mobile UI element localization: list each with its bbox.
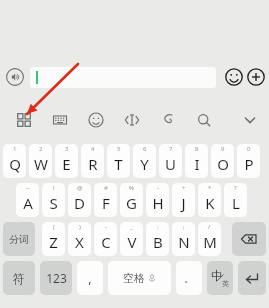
button[interactable]: -: [146, 183, 169, 217]
staticText: ?: [234, 184, 237, 192]
button[interactable]: 3: [55, 144, 78, 178]
staticText: 3: [65, 145, 69, 153]
button[interactable]: 符: [3, 261, 35, 295]
staticText: R: [88, 154, 98, 174]
button[interactable]: +: [172, 183, 195, 217]
staticText: J: [181, 193, 186, 213]
staticText: E: [62, 154, 71, 174]
button[interactable]: ?: [224, 183, 247, 217]
staticText: #: [104, 184, 108, 192]
staticText: 9: [221, 145, 225, 153]
staticText: *: [208, 184, 212, 192]
button[interactable]: _: [120, 222, 143, 256]
staticText: (: [53, 223, 55, 231]
staticText: ~: [26, 184, 30, 192]
staticText: S: [49, 193, 58, 213]
button[interactable]: 9: [211, 144, 234, 178]
button[interactable]: 。: [176, 261, 202, 295]
button[interactable]: Hide keyboard: [240, 110, 260, 130]
staticText: O: [217, 154, 229, 174]
button[interactable]: -: [94, 222, 117, 256]
button[interactable]: @: [68, 183, 91, 217]
staticText: T: [114, 154, 123, 174]
button[interactable]: 1: [3, 144, 26, 178]
button[interactable]: :: [146, 222, 169, 256]
staticText: %: [129, 184, 134, 192]
staticText: Q: [9, 154, 21, 174]
staticText: I: [194, 154, 200, 174]
button[interactable]: [30, 67, 216, 88]
button[interactable]: 7: [159, 144, 182, 178]
button[interactable]: ,: [77, 261, 103, 295]
staticText: Y: [140, 154, 149, 174]
staticText: /: [208, 223, 211, 231]
staticText: :: [157, 223, 159, 231]
button[interactable]: 5: [107, 144, 130, 178]
button[interactable]: Edit text: [122, 110, 142, 130]
staticText: @: [77, 184, 83, 192]
staticText: K: [205, 193, 215, 213]
staticText: 2: [39, 145, 43, 153]
button[interactable]: 空格: [108, 261, 171, 295]
button[interactable]: 2: [29, 144, 52, 178]
button[interactable]: (: [42, 222, 65, 256]
button[interactable]: 123: [40, 261, 72, 295]
staticText: A: [23, 193, 33, 213]
staticText: ,: [88, 269, 92, 287]
staticText: 0: [247, 145, 251, 153]
staticText: M: [203, 232, 217, 252]
button[interactable]: !: [42, 183, 65, 217]
staticText: F: [102, 193, 110, 213]
button[interactable]: 8: [185, 144, 208, 178]
staticText: X: [75, 232, 84, 252]
button[interactable]: #: [94, 183, 117, 217]
button[interactable]: %: [120, 183, 143, 217]
staticText: Z: [49, 232, 58, 252]
staticText: C: [101, 232, 111, 252]
staticText: N: [178, 232, 190, 252]
button[interactable]: 中: [207, 261, 233, 295]
button[interactable]: Keyboard layout: [50, 110, 70, 130]
staticText: U: [165, 154, 176, 174]
staticText: -: [105, 223, 107, 231]
button[interactable]: ~: [16, 183, 39, 217]
button[interactable]: 4: [81, 144, 104, 178]
button[interactable]: Clipboard: [158, 110, 178, 130]
staticText: 5: [117, 145, 121, 153]
button[interactable]: 分词: [3, 222, 35, 256]
staticText: P: [244, 154, 254, 174]
staticText: D: [74, 193, 85, 213]
staticText: -: [157, 184, 159, 192]
staticText: 8: [195, 145, 199, 153]
button[interactable]: ): [68, 222, 91, 256]
staticText: 4: [91, 145, 95, 153]
button[interactable]: Emoji: [225, 68, 243, 86]
staticText: W: [34, 154, 48, 174]
button[interactable]: Search: [194, 110, 214, 130]
staticText: +: [182, 184, 186, 192]
staticText: 中: [211, 268, 223, 283]
button[interactable]: 0: [237, 144, 260, 178]
staticText: !: [53, 184, 55, 192]
button[interactable]: Voice input: [6, 68, 24, 86]
staticText: _: [130, 223, 133, 231]
button[interactable]: Stickers: [86, 110, 106, 130]
staticText: G: [126, 193, 137, 213]
staticText: ): [79, 223, 81, 231]
button[interactable]: [238, 261, 266, 295]
button[interactable]: /: [198, 222, 221, 256]
staticText: 。: [184, 272, 194, 285]
button[interactable]: Toolbox: [14, 110, 34, 130]
staticText: 123: [46, 270, 67, 286]
staticText: H: [152, 193, 164, 213]
button[interactable]: More: [247, 68, 265, 86]
staticText: L: [232, 193, 240, 213]
button[interactable]: ;: [172, 222, 195, 256]
button[interactable]: 6: [133, 144, 156, 178]
staticText: 7: [169, 145, 173, 153]
staticText: 空格: [123, 271, 145, 285]
button[interactable]: *: [198, 183, 221, 217]
button[interactable]: [232, 222, 266, 256]
staticText: ;: [183, 223, 185, 231]
staticText: 分词: [9, 233, 29, 246]
